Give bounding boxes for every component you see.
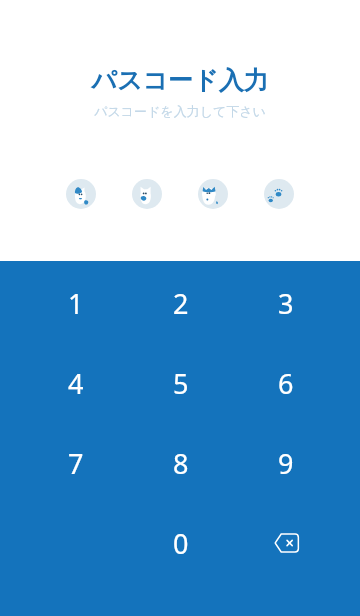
button[interactable]: 5 xyxy=(128,343,233,423)
button[interactable]: 8 xyxy=(128,423,233,503)
button[interactable]: Passcode digit 2 xyxy=(132,179,162,209)
staticText: 1 xyxy=(68,285,84,322)
button[interactable]: Passcode digit 4 xyxy=(264,179,294,209)
staticText: 7 xyxy=(68,445,84,482)
button[interactable]: 3 xyxy=(233,263,338,343)
button[interactable]: 9 xyxy=(233,423,338,503)
button[interactable]: 4 xyxy=(23,343,128,423)
button[interactable]: Passcode digit 3 xyxy=(198,179,228,209)
staticText: 5 xyxy=(173,365,189,402)
staticText: 9 xyxy=(278,445,294,482)
button[interactable]: 1 xyxy=(23,263,128,343)
staticText: 2 xyxy=(173,285,189,322)
staticText: 0 xyxy=(173,525,189,562)
button[interactable]: Passcode digit 1 xyxy=(66,179,96,209)
staticText: 8 xyxy=(173,445,189,482)
staticText: 4 xyxy=(68,365,84,402)
button[interactable]: 0 xyxy=(128,503,233,583)
staticText: 3 xyxy=(278,285,294,322)
button[interactable]: Delete xyxy=(233,503,338,583)
button[interactable]: 6 xyxy=(233,343,338,423)
button[interactable]: 7 xyxy=(23,423,128,503)
button[interactable]: 2 xyxy=(128,263,233,343)
staticText: パスコードを入力して下さい xyxy=(0,103,360,119)
staticText: 6 xyxy=(278,365,294,402)
staticText: パスコード入力 xyxy=(0,65,360,96)
